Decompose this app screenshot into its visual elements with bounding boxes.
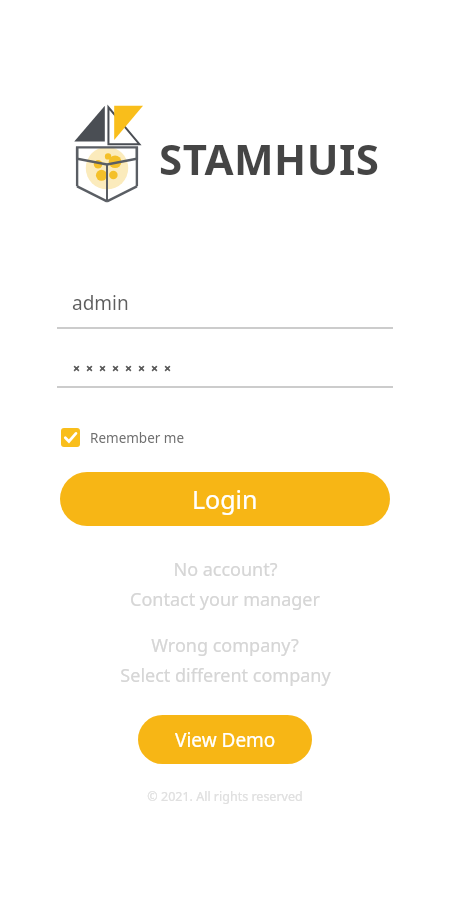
- staticText: © 2021. All rights reserved: [0, 788, 450, 805]
- button[interactable]: Login: [60, 472, 390, 526]
- button[interactable]: No account?: [0, 557, 450, 612]
- staticText: Remember me: [90, 429, 185, 447]
- button[interactable]: Remember me: [61, 428, 185, 447]
- staticText: STAMHUIS: [159, 130, 380, 187]
- button[interactable]: [57, 364, 393, 388]
- staticText: Select different company: [120, 663, 331, 688]
- staticText: Wrong company?: [151, 633, 299, 658]
- staticText: View Demo: [175, 727, 276, 753]
- staticText: Contact your manager: [130, 587, 320, 612]
- staticText: No account?: [173, 557, 278, 582]
- staticText: admin: [72, 290, 129, 316]
- button[interactable]: View Demo: [138, 715, 312, 764]
- button[interactable]: admin: [57, 290, 393, 329]
- staticText: Login: [192, 482, 258, 516]
- button[interactable]: Wrong company?: [0, 633, 450, 688]
